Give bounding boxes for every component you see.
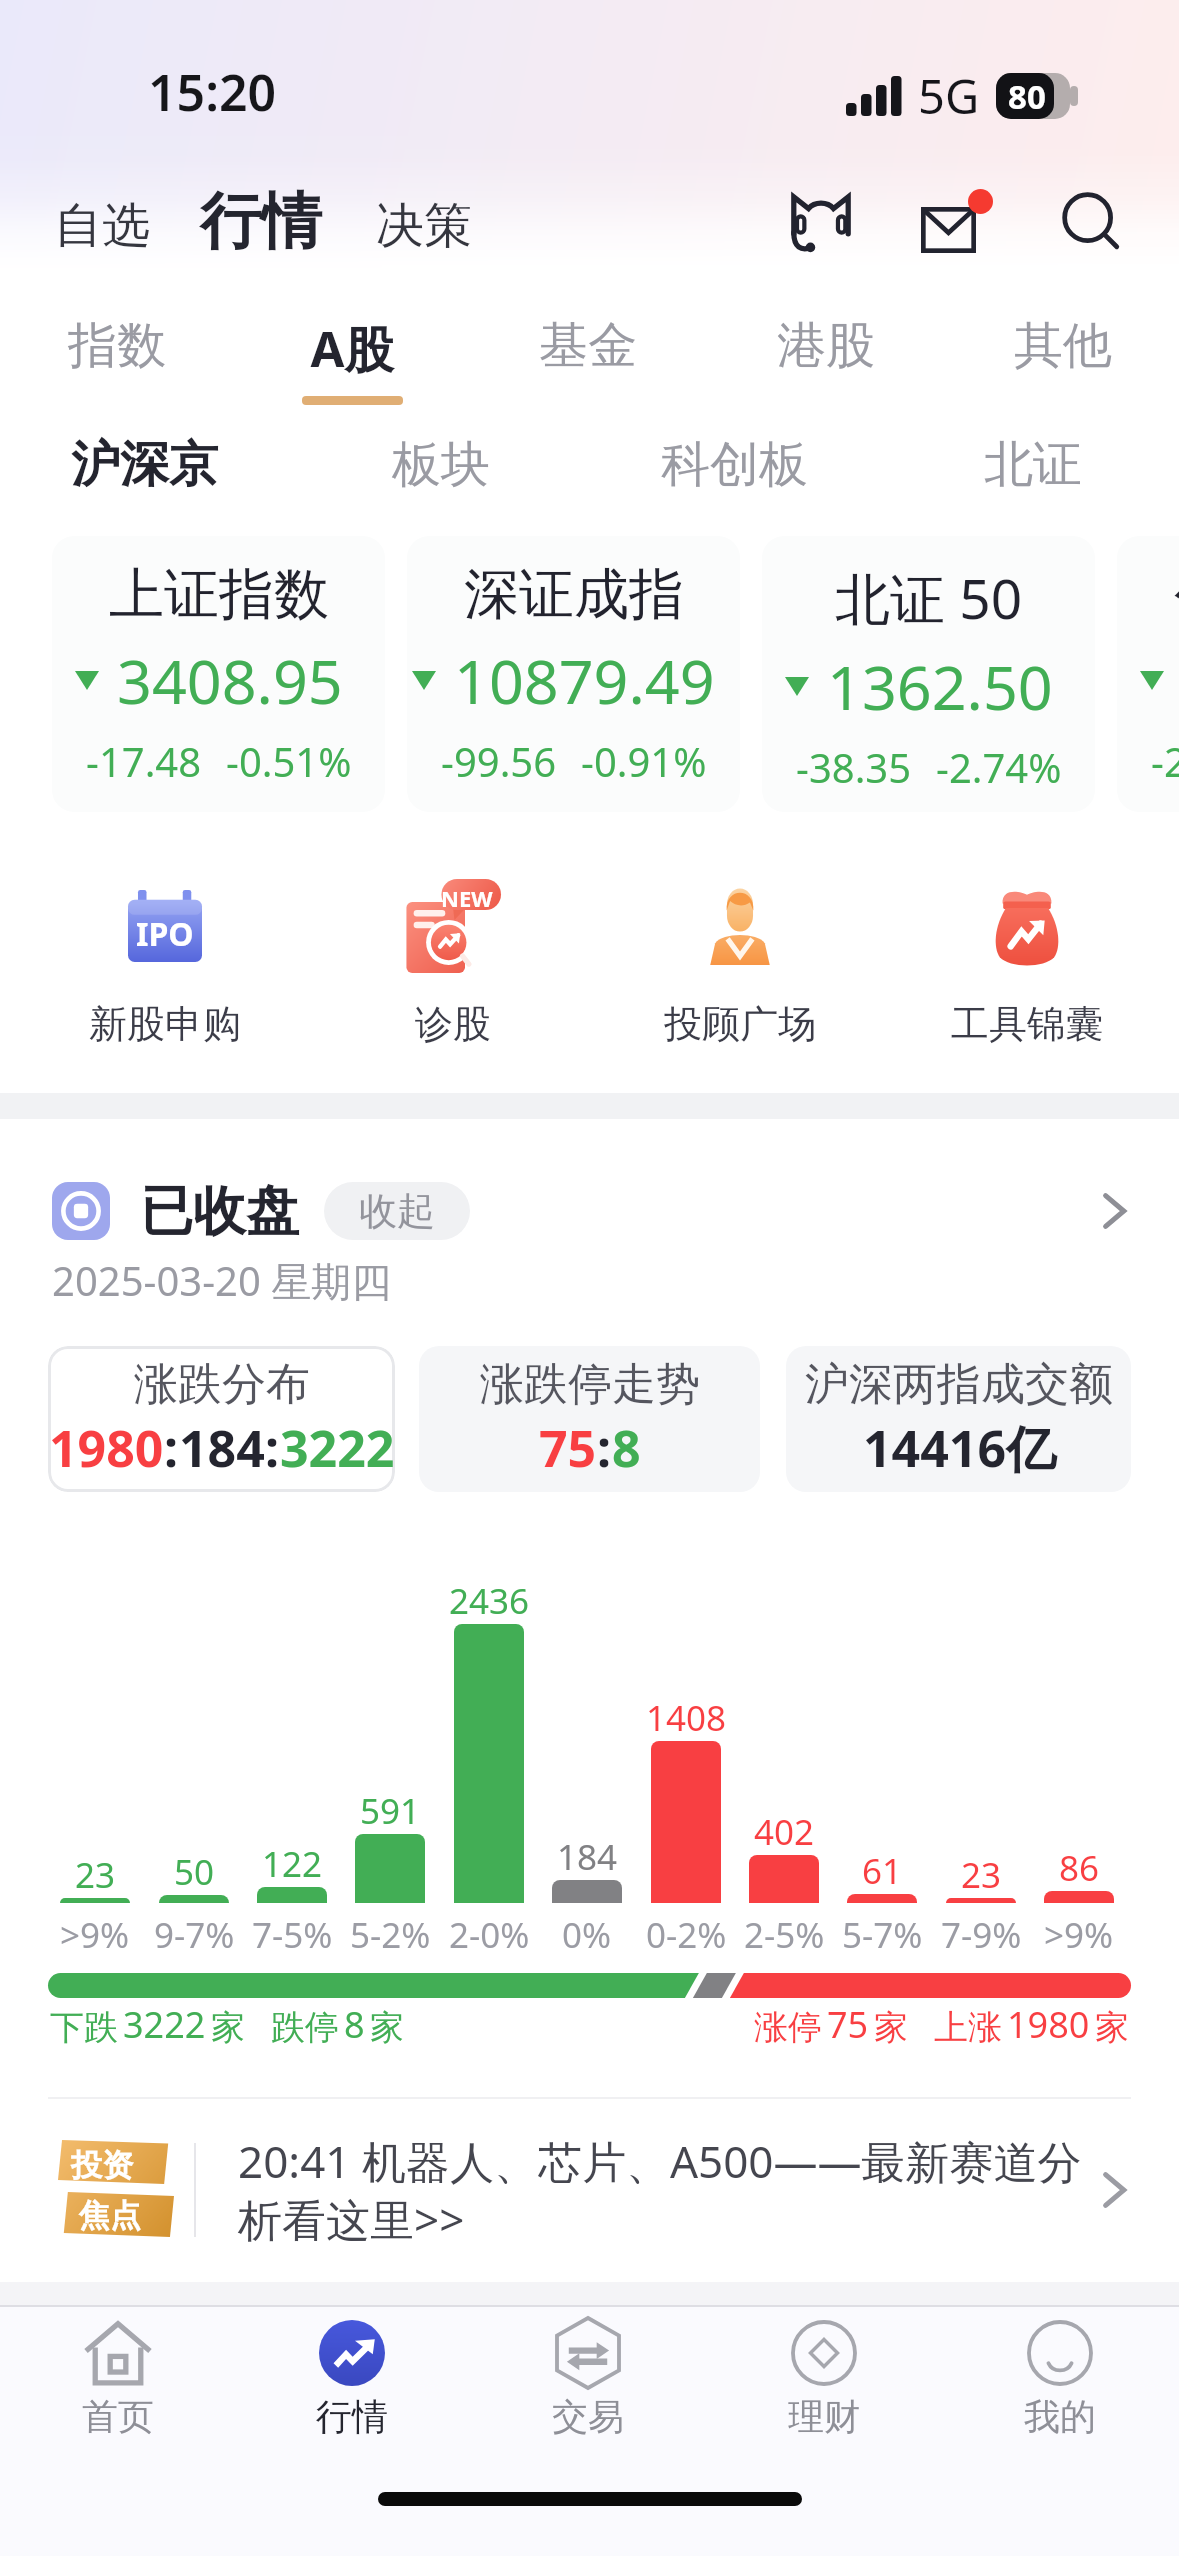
staticText: : (164, 1414, 179, 1482)
staticText: 1408 (646, 1694, 727, 1742)
staticText: 5-7% (842, 1911, 923, 1959)
staticText: 家 (874, 2006, 908, 2049)
staticText: 86 (1059, 1844, 1100, 1892)
staticText: 投资 (71, 2146, 133, 2185)
staticText: 2-5% (744, 1911, 825, 1959)
staticText: 沪深京 (71, 434, 218, 496)
button[interactable]: 我的 (980, 2318, 1140, 2439)
button[interactable]: 港股 (746, 296, 906, 406)
staticText: -0.51% (226, 734, 352, 788)
staticText: 3222 (280, 1414, 395, 1482)
button[interactable]: 已收盘 (0, 1158, 1179, 1264)
button[interactable]: 科创板 (634, 416, 834, 514)
button[interactable]: 基金 (508, 296, 668, 406)
staticText: 自选 (54, 196, 150, 256)
staticText: 20:41 机器人、芯片、A500——最新赛道分析看这里>> (238, 2131, 1086, 2249)
staticText: 7-5% (252, 1911, 333, 1959)
button[interactable]: 工具锦囊 (897, 874, 1157, 1048)
staticText: 5G (918, 64, 980, 128)
button[interactable]: 首页 (38, 2318, 198, 2439)
button[interactable]: IPO (35, 874, 295, 1048)
staticText: 深证成指 (464, 560, 684, 629)
button[interactable]: 自选 (42, 178, 162, 274)
button[interactable]: Customer service (772, 172, 870, 270)
button[interactable]: 交易 (508, 2318, 668, 2439)
button[interactable]: 沪深两指成交额 (786, 1346, 1131, 1492)
staticText: 122 (262, 1840, 323, 1888)
button[interactable]: 创业板指 (1117, 536, 1179, 812)
button[interactable]: NEW (323, 874, 583, 1048)
staticText: 7-9% (941, 1911, 1022, 1959)
staticText: 科创板 (661, 434, 808, 496)
staticText: 新股申购 (89, 1000, 241, 1048)
staticText: 0-2% (646, 1911, 727, 1959)
staticText: 涨停 (754, 2006, 822, 2049)
staticText: 184 (179, 1414, 265, 1482)
staticText: 2436 (449, 1577, 530, 1625)
button[interactable]: 理财 (744, 2318, 904, 2439)
staticText: 行情 (200, 183, 322, 260)
staticText: 3408.95 (117, 639, 343, 722)
button[interactable]: Messages (908, 172, 1006, 270)
staticText: 5-2% (350, 1911, 431, 1959)
staticText: 工具锦囊 (951, 1000, 1103, 1048)
button[interactable]: 投资 (0, 2100, 1179, 2280)
staticText: 决策 (376, 196, 472, 256)
staticText: 23 (75, 1851, 116, 1899)
staticText: 家 (211, 2006, 245, 2049)
staticText: 10879.49 (454, 639, 715, 722)
button[interactable] (48, 1346, 395, 1492)
staticText: -17.48 (86, 734, 202, 788)
staticText: 1362.50 (827, 645, 1053, 728)
button[interactable]: 涨跌停走势 (419, 1346, 760, 1492)
staticText: 591 (360, 1787, 421, 1835)
staticText: 75 (539, 1414, 597, 1482)
staticText: 指数 (37, 315, 197, 377)
staticText: IPO (136, 912, 194, 956)
button[interactable]: A股 (272, 296, 432, 406)
button[interactable]: 行情 (188, 173, 334, 270)
button[interactable]: 上证指数 (52, 536, 385, 812)
button[interactable]: 北证 (933, 416, 1133, 514)
staticText: 家 (1095, 2006, 1129, 2049)
staticText: 14416亿 (863, 1414, 1056, 1482)
staticText: 61 (862, 1847, 903, 1895)
staticText: 50 (174, 1848, 215, 1896)
staticText: 23 (961, 1851, 1002, 1899)
button[interactable]: 行情 (272, 2318, 432, 2439)
staticText: 创业板指 (1174, 560, 1179, 629)
staticText: NEW (441, 883, 493, 913)
button[interactable]: 沪深京 (44, 416, 244, 514)
staticText: -0.91% (581, 734, 707, 788)
button[interactable]: Search (1042, 172, 1140, 270)
staticText: 下跌 (50, 2006, 118, 2049)
staticText: 港股 (746, 315, 906, 377)
staticText: 北证 50 (835, 560, 1023, 635)
staticText: 1980 (1007, 2000, 1090, 2049)
button[interactable]: 指数 (37, 296, 197, 406)
staticText: 跌停 (271, 2006, 339, 2049)
staticText: 首页 (82, 2394, 154, 2439)
staticText: 15:20 (148, 58, 277, 126)
staticText: >9% (60, 1911, 130, 1959)
button[interactable]: 投顾广场 (610, 874, 870, 1048)
staticText: 交易 (552, 2394, 624, 2439)
button[interactable]: 深证成指 (407, 536, 740, 812)
staticText: -28.10 (1151, 734, 1179, 788)
button[interactable]: 决策 (364, 178, 484, 274)
button[interactable]: 收起 (324, 1182, 470, 1240)
staticText: 75 (827, 2000, 869, 2049)
button[interactable]: 北证 50 (762, 536, 1095, 812)
staticText: 涨跌停走势 (480, 1357, 700, 1412)
staticText: 已收盘 (140, 1178, 299, 1245)
staticText: 上涨 (934, 2006, 1002, 2049)
button[interactable]: 板块 (341, 416, 541, 514)
button[interactable]: 其他 (983, 296, 1143, 406)
staticText: 3222 (123, 2000, 206, 2049)
staticText: 沪深两指成交额 (805, 1357, 1113, 1412)
staticText: 投顾广场 (664, 1000, 816, 1048)
staticText: 2025-03-20 星期四 (52, 1253, 392, 1308)
staticText: >9% (1044, 1911, 1114, 1959)
staticText: 上证指数 (109, 560, 329, 629)
staticText: 北证 (984, 434, 1082, 496)
